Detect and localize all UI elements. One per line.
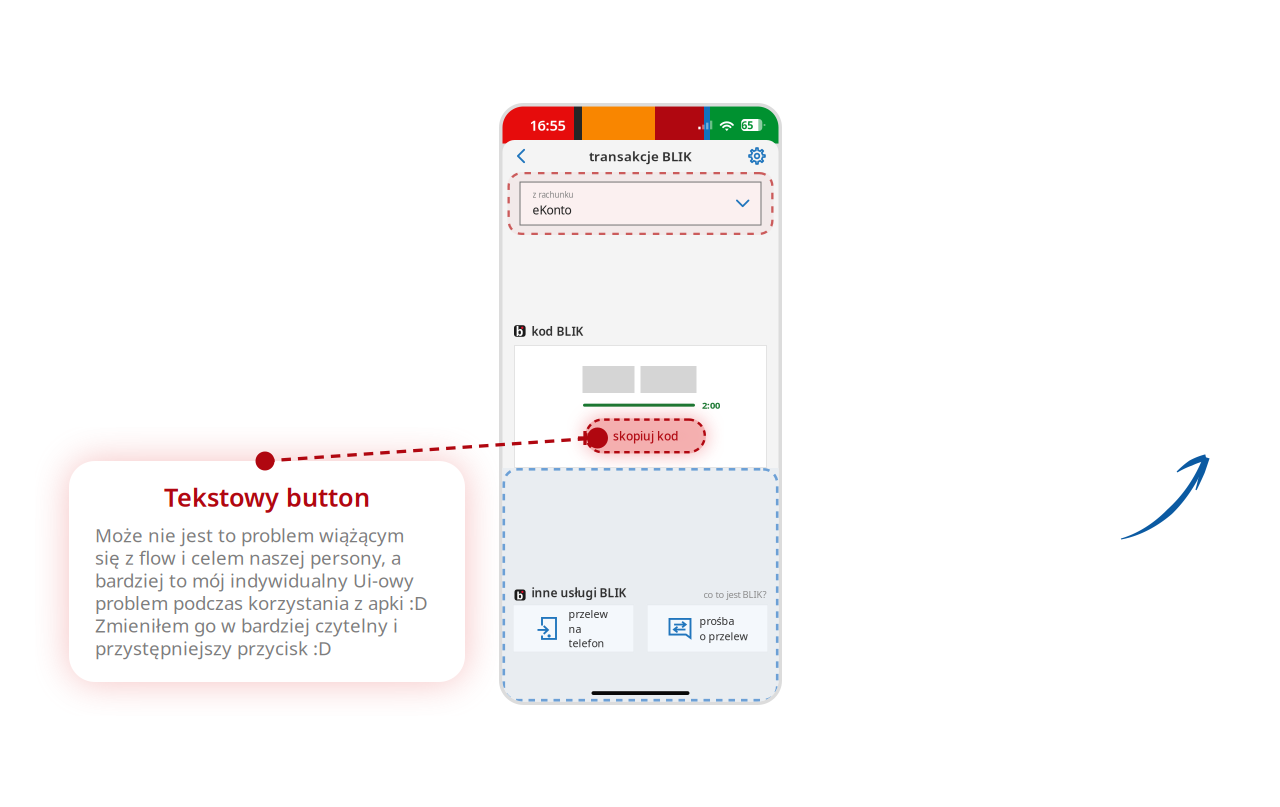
staticText: o przelew (699, 629, 747, 643)
staticText: prośba (699, 614, 734, 628)
staticText: transakcje BLIK (589, 147, 692, 165)
button[interactable]: Settings (738, 141, 775, 170)
staticText: bardziej to mój indywidualny Ui-owy (95, 568, 414, 592)
staticText: skopiuj kod (613, 428, 678, 444)
staticText: 2:00 (702, 399, 720, 411)
button[interactable]: skopiuj kod (585, 418, 706, 453)
staticText: problem podczas korzystania z apki :D (95, 590, 428, 615)
staticText: się z flow i celem naszej persony, a (95, 545, 401, 570)
button[interactable]: przelew (512, 604, 634, 653)
staticText: inne usługi BLIK (532, 585, 627, 600)
staticText: kod BLIK (532, 323, 584, 339)
staticText: przelew (568, 607, 607, 621)
button[interactable]: co to jest BLIK? (703, 588, 766, 601)
staticText: Zmieniłem go w bardziej czytelny i (95, 613, 398, 638)
staticText: co to jest BLIK? (703, 588, 766, 601)
button[interactable]: Back (505, 142, 536, 170)
staticText: eKonto (532, 202, 571, 218)
staticText: b (516, 588, 523, 602)
staticText: Może nie jest to problem wiążącym (95, 522, 404, 547)
button[interactable]: prośba (646, 604, 768, 653)
staticText: z rachunku (532, 189, 573, 200)
staticText: 65 (741, 118, 753, 132)
button[interactable]: z rachunku (519, 181, 761, 225)
staticText: przystępniejszy przycisk :D (95, 635, 332, 660)
staticText: na telefon (568, 622, 604, 650)
staticText: 16:55 (529, 115, 565, 135)
staticText: b (516, 323, 524, 339)
staticText: Tekstowy button (164, 480, 370, 514)
